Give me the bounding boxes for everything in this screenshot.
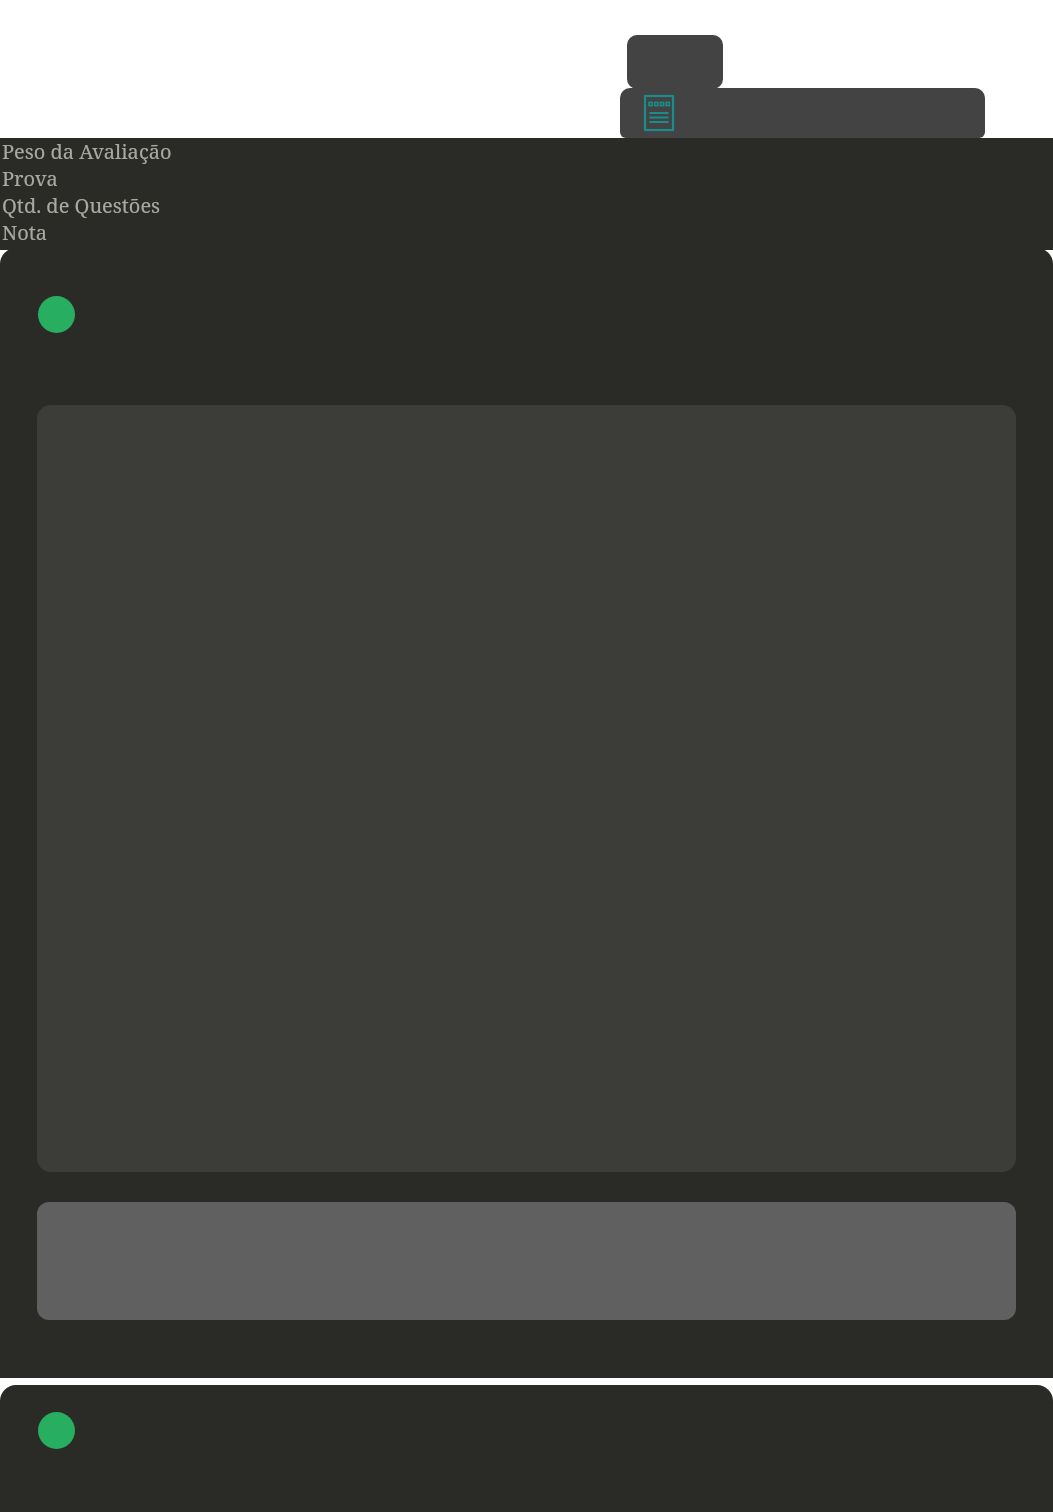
button[interactable]: Card xyxy=(627,35,723,89)
button[interactable]: Avaliação xyxy=(620,88,985,138)
staticText: Prova xyxy=(2,165,58,192)
button[interactable]: Status inferior xyxy=(0,1385,1053,1475)
staticText: Qtd. de Questões xyxy=(2,192,161,219)
staticText: Nota xyxy=(2,219,48,246)
staticText: Peso da Avaliação xyxy=(2,138,172,165)
button[interactable]: Status xyxy=(0,288,1053,340)
